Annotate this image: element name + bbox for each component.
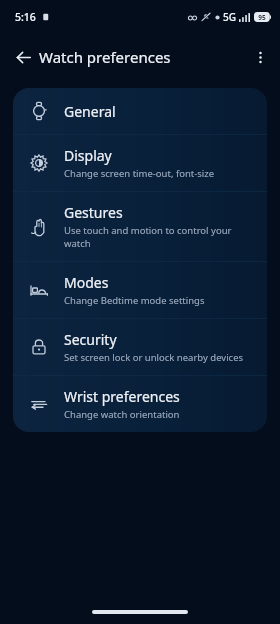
staticText: 5G [223,10,236,24]
staticText: Watch preferences [39,47,171,67]
staticText: 5:16 [15,10,36,24]
staticText: 95 [258,13,266,22]
staticText: Display [64,146,112,165]
button[interactable]: Back [6,40,40,74]
staticText: General [64,102,116,121]
button[interactable]: Wrist preferences [13,376,267,432]
staticText: Gestures [64,203,123,222]
button[interactable]: More options [244,41,276,73]
staticText: Security [64,330,117,349]
staticText: Modes [64,273,109,292]
staticText: Change screen time-out, font-size [64,167,215,180]
staticText: Wrist preferences [64,387,180,406]
staticText: Change Bedtime mode settings [64,294,205,307]
staticText: Use touch and motion to control your wat… [64,224,253,250]
button[interactable]: Modes [13,262,267,318]
button[interactable]: Security [13,319,267,375]
button[interactable]: Gestures [13,192,267,261]
staticText: Set screen lock or unlock nearby devices [64,351,244,364]
staticText: Change watch orientation [64,408,180,421]
button[interactable]: Display [13,135,267,191]
button[interactable]: General [13,88,267,134]
